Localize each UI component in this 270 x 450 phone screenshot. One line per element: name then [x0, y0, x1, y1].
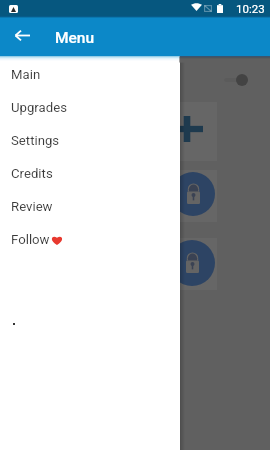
staticText: Upgrades: [11, 100, 67, 115]
button[interactable]: Main: [0, 58, 180, 91]
button[interactable]: Review: [0, 190, 180, 223]
button[interactable]: Back: [7, 20, 38, 51]
button[interactable]: Toggle: [222, 70, 250, 88]
button[interactable]: Item: [163, 170, 217, 222]
button[interactable]: Follow: [0, 223, 180, 256]
staticText: Follow: [11, 232, 53, 247]
staticText: Main: [11, 67, 41, 82]
button[interactable]: Settings: [0, 124, 180, 157]
staticText: 10:23: [236, 2, 265, 15]
button[interactable]: Credits: [0, 157, 180, 190]
staticText: Settings: [11, 133, 60, 148]
staticText: Menu: [55, 29, 95, 47]
button[interactable]: Upgrades: [0, 91, 180, 124]
staticText: Credits: [11, 166, 53, 181]
button[interactable]: Item: [163, 102, 217, 161]
staticText: Review: [11, 199, 53, 214]
button[interactable]: Item: [163, 238, 217, 290]
